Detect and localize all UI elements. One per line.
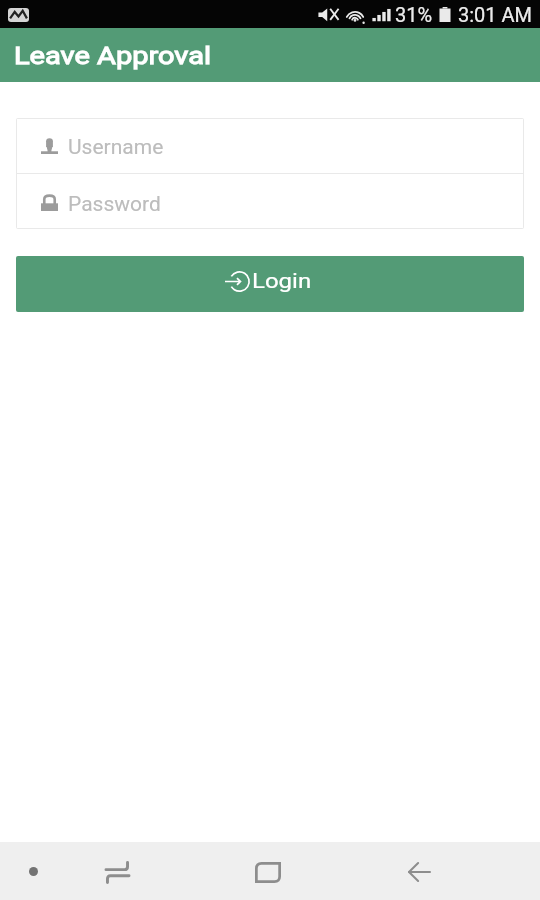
staticText: Password xyxy=(68,193,161,216)
staticText: 31% xyxy=(395,3,433,26)
button[interactable]: Home xyxy=(246,849,290,893)
staticText: 3:01 AM xyxy=(458,3,533,26)
button[interactable]: Back xyxy=(397,849,441,893)
staticText: Leave Approval xyxy=(14,41,212,70)
button[interactable]: Recent apps xyxy=(95,849,139,893)
staticText: Username xyxy=(68,136,164,159)
button[interactable]: Password xyxy=(17,174,523,228)
button[interactable]: Login xyxy=(16,256,524,312)
button[interactable]: Menu xyxy=(13,851,53,891)
button[interactable]: Username xyxy=(17,119,523,173)
staticText: Login xyxy=(252,269,312,293)
